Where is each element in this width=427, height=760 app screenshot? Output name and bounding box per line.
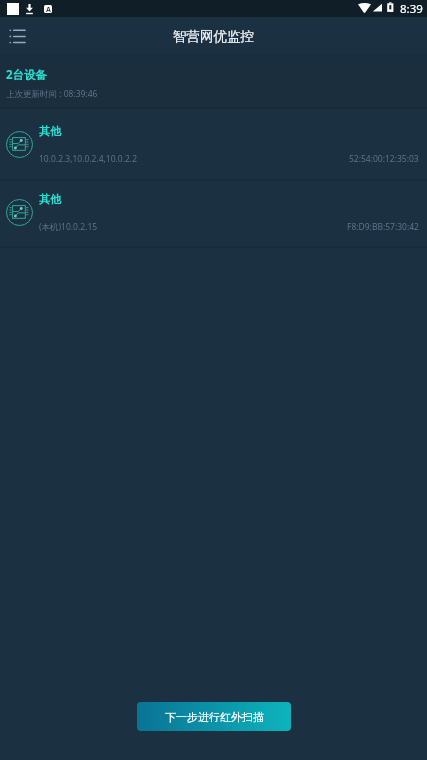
button[interactable]: Menu	[0, 18, 36, 54]
staticText: 8:39	[400, 1, 423, 17]
staticText: 其他	[39, 124, 61, 138]
staticText: 10.0.2.3,10.0.2.4,10.0.2.2	[39, 153, 137, 165]
staticText: 52:54:00:12:35:03	[349, 153, 419, 165]
staticText: 智营网优监控	[173, 28, 254, 45]
staticText: 上次更新时间 : 08:39:46	[6, 88, 98, 100]
staticText: 下一步进行红外扫描	[165, 710, 264, 724]
staticText: (本机)10.0.2.15	[39, 221, 98, 233]
button[interactable]: 其他	[0, 181, 427, 246]
button[interactable]: 下一步进行红外扫描	[137, 702, 291, 731]
staticText: F8:D9:BB:57:30:42	[347, 221, 419, 233]
staticText: 其他	[39, 192, 61, 206]
staticText: 2台设备	[6, 67, 48, 83]
button[interactable]: 其他	[0, 109, 427, 179]
staticText: A	[46, 5, 51, 13]
